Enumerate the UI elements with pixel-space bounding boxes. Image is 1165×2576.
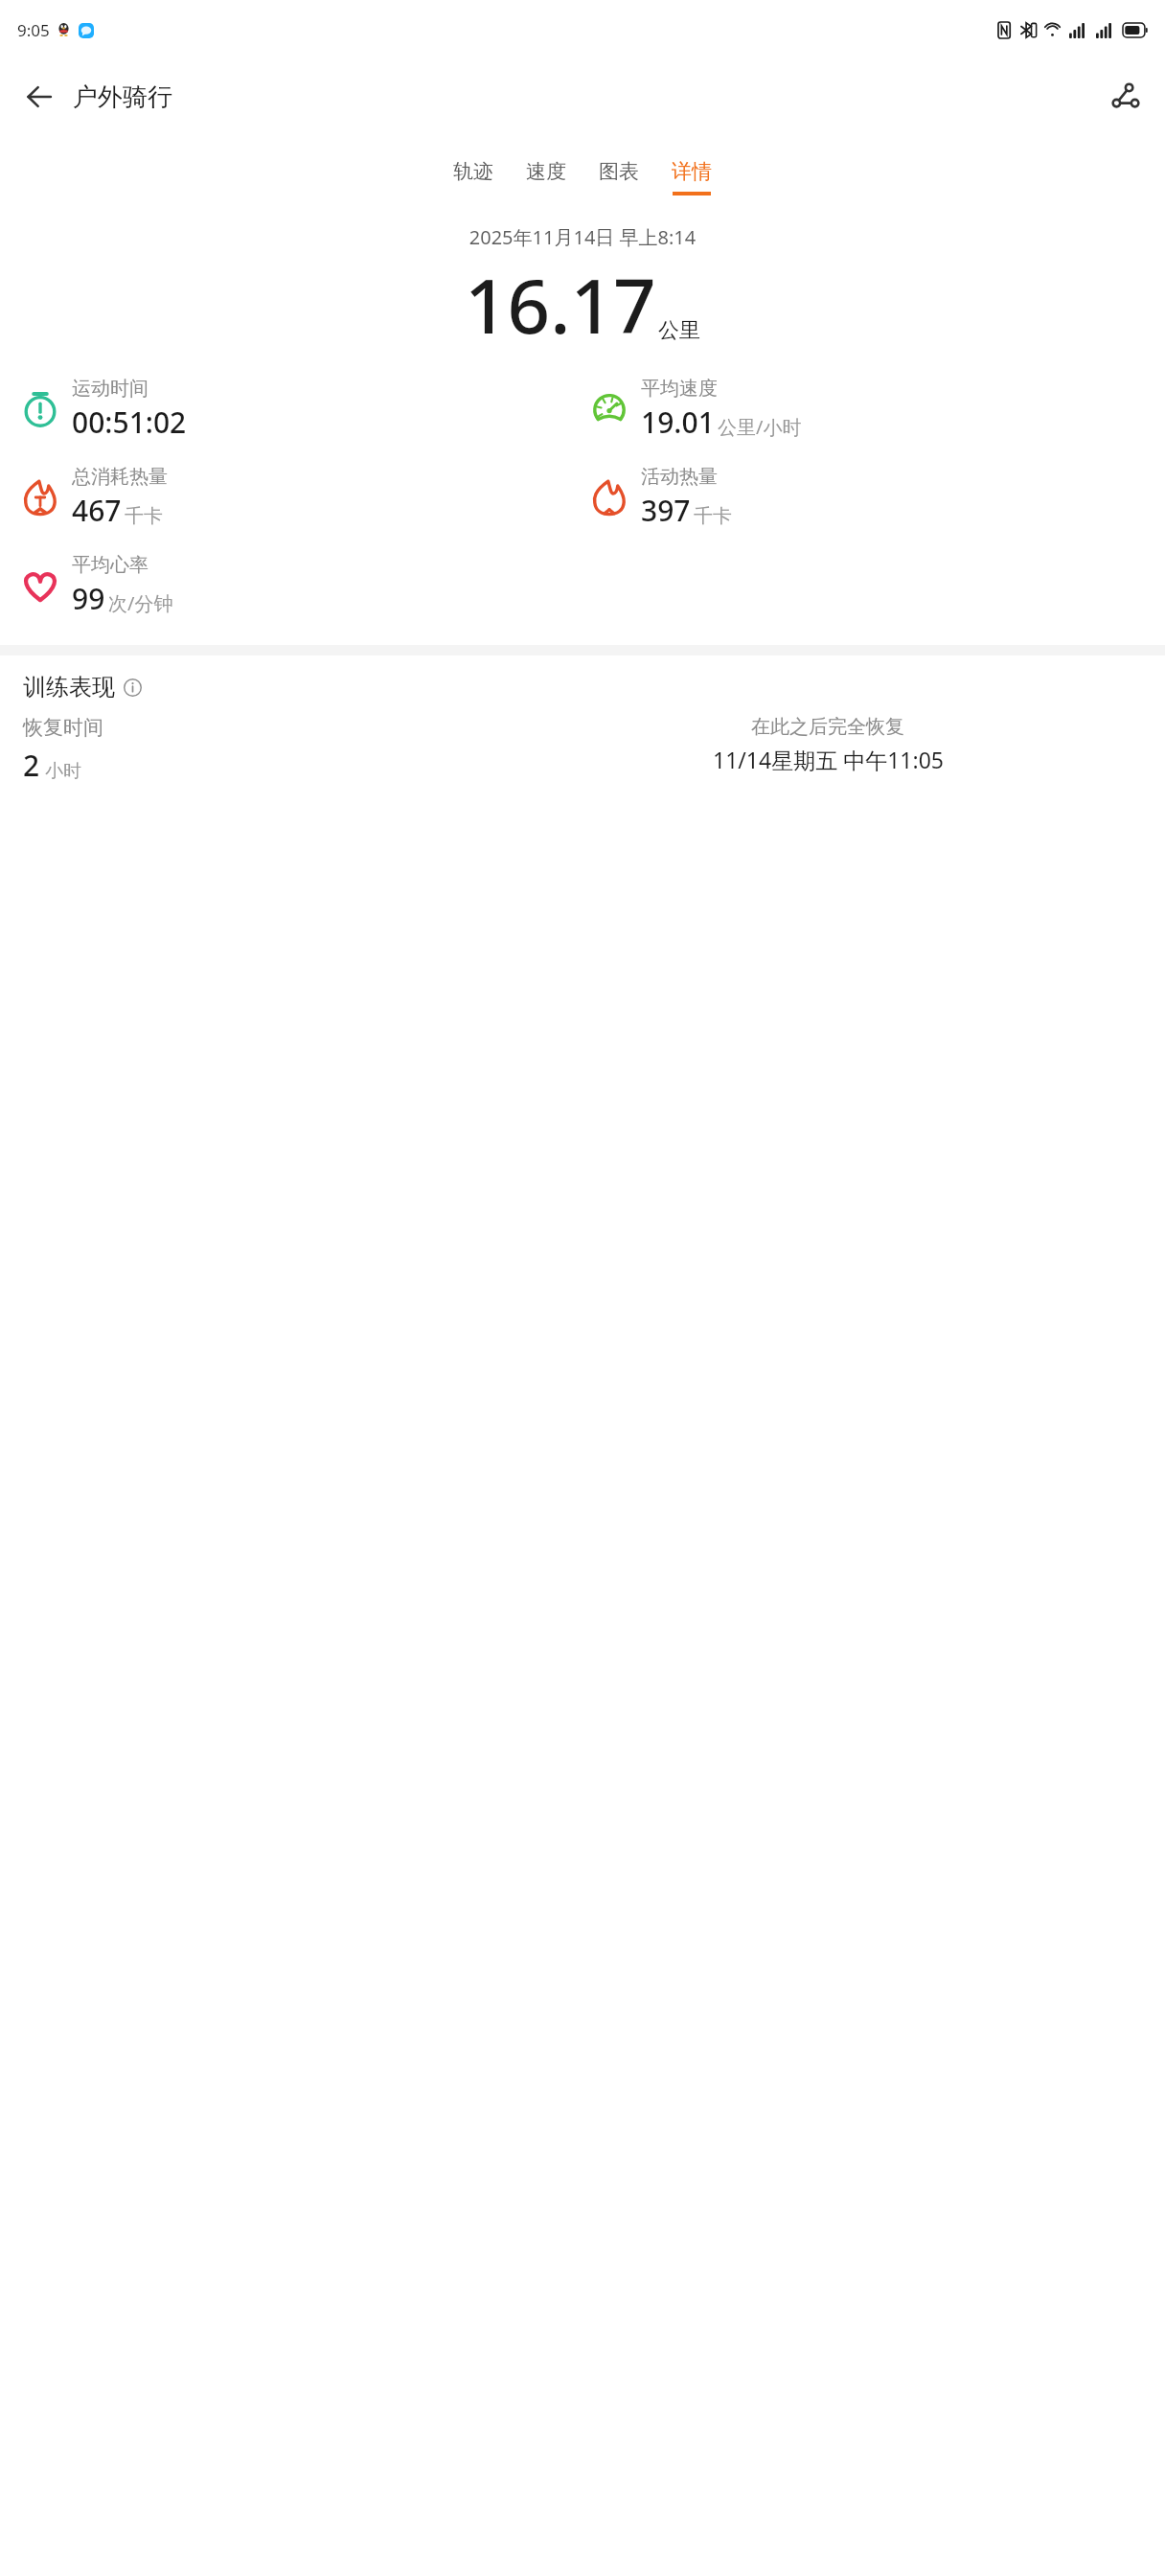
- staticText: 训练表现: [23, 673, 115, 701]
- staticText: 467: [72, 491, 122, 530]
- button[interactable]: Back: [13, 71, 65, 123]
- staticText: 公里: [658, 317, 700, 344]
- staticText: 次/分钟: [108, 590, 173, 616]
- staticText: 图表: [599, 159, 639, 184]
- button[interactable]: 轨迹: [437, 155, 510, 199]
- staticText: 运动时间: [72, 377, 148, 401]
- staticText: 千卡: [694, 504, 732, 528]
- staticText: 小时: [45, 760, 81, 783]
- staticText: 活动热量: [641, 465, 718, 489]
- button[interactable]: Share: [1100, 71, 1152, 123]
- staticText: 19.01: [641, 402, 715, 442]
- staticText: 轨迹: [453, 159, 493, 184]
- staticText: 总消耗热量: [72, 465, 168, 489]
- staticText: 00:51:02: [72, 402, 187, 442]
- button[interactable]: 图表: [582, 155, 655, 199]
- button[interactable]: 训练表现: [23, 673, 1165, 701]
- staticText: 16.17: [465, 254, 656, 356]
- button[interactable]: 运动时间: [21, 377, 187, 442]
- button[interactable]: 平均心率: [21, 553, 173, 618]
- staticText: 速度: [526, 159, 566, 184]
- staticText: 恢复时间: [23, 715, 103, 740]
- other: Info: [124, 678, 142, 697]
- button[interactable]: 总消耗热量: [21, 465, 168, 530]
- staticText: 详情: [672, 159, 712, 184]
- staticText: 平均心率: [72, 553, 148, 577]
- button[interactable]: 速度: [510, 155, 582, 199]
- staticText: 在此之后完全恢复: [751, 715, 904, 739]
- staticText: 9:05: [17, 19, 50, 41]
- staticText: 11/14星期五 中午11:05: [713, 745, 944, 774]
- staticText: 公里/小时: [718, 414, 802, 440]
- staticText: 平均速度: [641, 377, 718, 401]
- staticText: 2: [23, 746, 40, 785]
- button[interactable]: 活动热量: [590, 465, 732, 530]
- staticText: 千卡: [125, 504, 163, 528]
- button[interactable]: 详情: [655, 155, 728, 199]
- staticText: 户外骑行: [73, 81, 172, 113]
- staticText: 99: [72, 579, 105, 618]
- staticText: 397: [641, 491, 691, 530]
- staticText: 2025年11月14日 早上8:14: [0, 224, 1165, 250]
- button[interactable]: 平均速度: [590, 377, 802, 442]
